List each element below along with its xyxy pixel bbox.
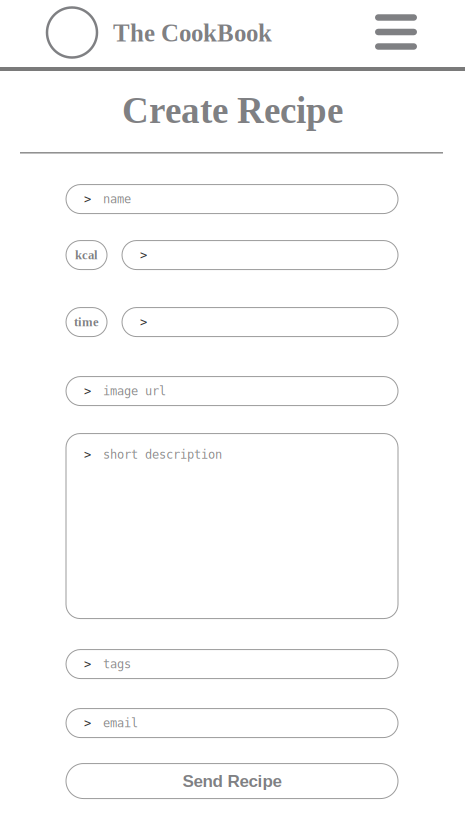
staticText: > xyxy=(84,657,91,671)
staticText: > xyxy=(84,384,91,398)
staticText: > xyxy=(84,447,91,461)
staticText: > xyxy=(140,248,147,262)
button[interactable]: > xyxy=(66,184,398,213)
staticText: tags xyxy=(103,657,131,671)
button[interactable]: > xyxy=(122,307,398,336)
staticText: time xyxy=(74,315,99,329)
button[interactable]: Send Recipe xyxy=(66,763,398,798)
staticText: image url xyxy=(103,384,166,398)
button[interactable]: > xyxy=(66,649,398,678)
staticText: > xyxy=(84,716,91,730)
staticText: kcal xyxy=(75,248,98,262)
staticText: Send Recipe xyxy=(182,771,281,791)
staticText: > xyxy=(84,192,91,206)
staticText: Create Recipe xyxy=(122,90,343,131)
button[interactable]: > xyxy=(66,433,398,618)
staticText: email xyxy=(103,716,138,730)
button[interactable]: Menu xyxy=(365,6,417,61)
staticText: name xyxy=(103,192,131,206)
staticText: short description xyxy=(103,447,222,461)
button[interactable]: kcal xyxy=(66,240,107,269)
button[interactable]: > xyxy=(66,708,398,737)
button[interactable]: time xyxy=(66,307,107,336)
button[interactable]: > xyxy=(122,240,398,269)
staticText: The CookBook xyxy=(113,19,272,47)
staticText: > xyxy=(140,315,147,329)
button[interactable]: > xyxy=(66,376,398,405)
